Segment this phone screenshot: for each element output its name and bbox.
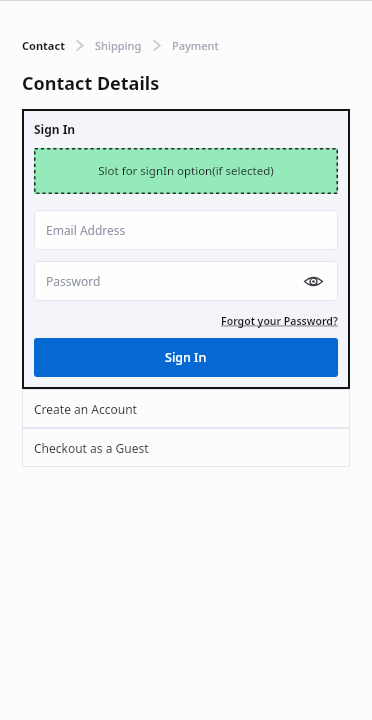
staticText: Password — [46, 273, 101, 289]
staticText: Sign In — [165, 349, 207, 366]
button[interactable]: Checkout as a Guest — [22, 428, 350, 467]
button[interactable]: Slot for signIn option(if selected) — [34, 148, 338, 194]
staticText: Email Address — [46, 222, 126, 238]
staticText: Contact Details — [22, 71, 160, 96]
staticText: Shipping — [95, 38, 142, 53]
button[interactable]: Shipping — [95, 38, 142, 53]
staticText: Payment — [172, 38, 219, 53]
button[interactable]: Password — [34, 261, 338, 301]
button[interactable]: Payment — [172, 38, 219, 53]
button[interactable]: Contact — [22, 38, 65, 53]
staticText: Checkout as a Guest — [34, 440, 149, 456]
button[interactable]: Sign In — [34, 338, 338, 377]
staticText: Slot for signIn option(if selected) — [98, 163, 274, 179]
button[interactable]: Show password — [300, 268, 326, 294]
button[interactable]: Create an Account — [22, 389, 350, 428]
staticText: Sign In — [34, 121, 76, 137]
staticText: Contact — [22, 38, 65, 53]
button[interactable]: Forgot your Password? — [221, 314, 338, 328]
button[interactable]: Email Address — [34, 210, 338, 250]
staticText: Create an Account — [34, 401, 137, 417]
staticText: Forgot your Password? — [221, 314, 338, 328]
